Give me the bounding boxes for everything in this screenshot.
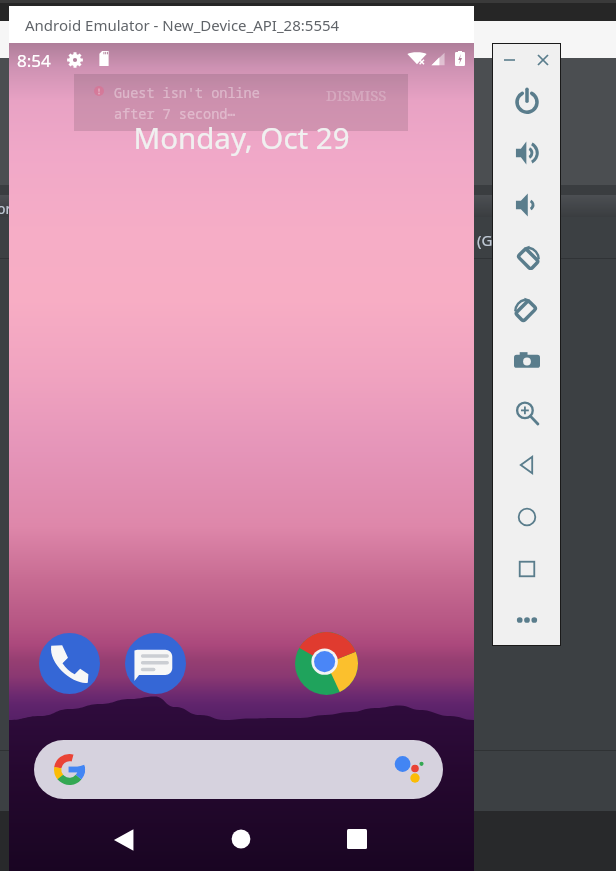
button[interactable]: Zoom xyxy=(493,387,560,439)
button[interactable]: Screenshot xyxy=(493,335,560,387)
button[interactable]: Search xyxy=(34,740,443,799)
button[interactable]: Rotate right xyxy=(493,283,560,335)
button[interactable]: Close xyxy=(526,44,560,75)
button[interactable]: Home xyxy=(493,491,560,543)
button[interactable]: Power xyxy=(493,75,560,127)
staticText: DISMISS xyxy=(326,85,387,105)
button[interactable]: Volume down xyxy=(493,179,560,231)
button[interactable]: Overview xyxy=(493,543,560,595)
button[interactable]: Back xyxy=(94,816,142,864)
staticText: (G ls) xyxy=(477,230,616,250)
button[interactable]: More xyxy=(493,595,560,645)
button[interactable]: Back xyxy=(493,439,560,491)
button[interactable]: Minimize xyxy=(493,44,526,75)
staticText: or xyxy=(0,199,12,218)
button[interactable]: Home xyxy=(217,815,265,863)
button[interactable]: Guest isn't online xyxy=(74,74,408,131)
button[interactable]: Messages xyxy=(125,633,186,694)
staticText: Monday, Oct 29 xyxy=(9,117,474,157)
staticText: Guest isn't online xyxy=(114,84,260,102)
staticText: Android Emulator - New_Device_API_28:555… xyxy=(25,15,340,35)
button[interactable]: Volume up xyxy=(493,127,560,179)
button[interactable]: Rotate left xyxy=(493,231,560,283)
button[interactable]: Phone xyxy=(39,633,100,694)
button[interactable]: Chrome xyxy=(295,632,358,695)
staticText: after 7 second⋯ xyxy=(114,105,236,123)
button[interactable]: Recents xyxy=(333,815,381,863)
staticText: 8:54 xyxy=(17,49,51,72)
